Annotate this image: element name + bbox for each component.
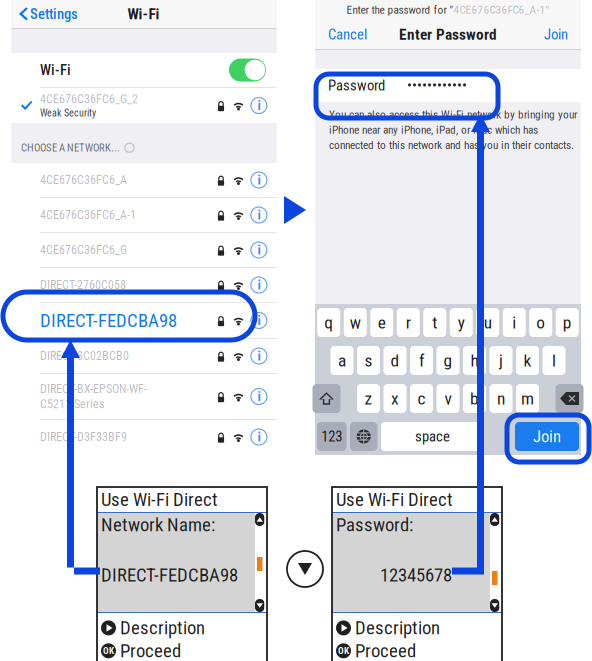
staticText: m: [521, 388, 534, 409]
staticText: DIRECT-2760C058: [40, 278, 126, 292]
button[interactable]: y: [450, 308, 473, 337]
button[interactable]: z: [357, 384, 380, 413]
staticText: Password: [328, 77, 385, 94]
button[interactable]: n: [489, 384, 512, 413]
button[interactable]: DIRECT-FEDCBA98: [11, 303, 277, 338]
button[interactable]: 4CE676C36FC6_G: [11, 233, 277, 267]
button[interactable]: Cancel: [315, 21, 367, 48]
button[interactable]: s: [357, 346, 380, 375]
staticText: Weak Security: [40, 107, 96, 119]
staticText: Wi-Fi: [40, 61, 71, 79]
staticText: k: [523, 350, 531, 371]
button[interactable]: i: [503, 308, 526, 337]
button[interactable]: d: [383, 346, 406, 375]
button[interactable]: r: [397, 308, 420, 337]
staticText: e: [378, 312, 386, 333]
button[interactable]: Next keyboard: [350, 422, 377, 451]
staticText: u: [484, 312, 492, 333]
button[interactable]: k: [516, 346, 539, 375]
button[interactable]: DIRECT-BX-EPSON-WF-: [11, 374, 277, 419]
staticText: Description: [355, 617, 440, 639]
staticText: n: [497, 388, 505, 409]
staticText: DIRECT-BX-EPSON-WF-: [40, 382, 147, 396]
staticText: i: [257, 389, 260, 404]
button[interactable]: h: [463, 346, 486, 375]
button[interactable]: Join: [515, 422, 579, 451]
staticText: Use Wi-Fi Direct: [336, 489, 453, 510]
button[interactable]: q: [317, 308, 340, 337]
staticText: f: [419, 350, 424, 371]
button[interactable]: m: [516, 384, 539, 413]
staticText: space: [415, 428, 450, 445]
button[interactable]: l: [542, 346, 565, 375]
button[interactable]: Wi-Fi on: [229, 58, 266, 81]
staticText: 4CE676C36FC6_A: [40, 173, 127, 187]
button[interactable]: o: [529, 308, 552, 337]
staticText: h: [470, 350, 478, 371]
staticText: b: [470, 388, 479, 409]
staticText: Join: [544, 26, 568, 43]
staticText: 12345678: [380, 564, 452, 586]
staticText: Enter Password: [399, 25, 497, 43]
staticText: Network Name:: [101, 514, 215, 536]
staticText: y: [458, 312, 465, 333]
staticText: i: [257, 313, 260, 328]
staticText: i: [512, 312, 516, 333]
staticText: g: [443, 350, 452, 371]
staticText: connected to this network and has you in…: [329, 139, 574, 152]
button[interactable]: Join: [544, 21, 581, 48]
staticText: i: [257, 277, 260, 293]
button[interactable]: e: [370, 308, 393, 337]
button[interactable]: Settings: [11, 0, 78, 28]
staticText: 4CE676C36FC6_G_2: [40, 92, 138, 106]
button[interactable]: DIRECT-D3F33BF9: [11, 420, 277, 454]
staticText: i: [257, 98, 260, 113]
button[interactable]: u: [476, 308, 499, 337]
button[interactable]: space: [381, 422, 484, 451]
staticText: DIRECT-FEDCBA98: [101, 564, 238, 586]
button[interactable]: 4CE676C36FC6_A-1: [11, 198, 277, 232]
staticText: p: [563, 312, 572, 333]
button[interactable]: DIRECT-2760C058: [11, 268, 277, 302]
button[interactable]: DIRECT-8C02BCB0: [11, 339, 277, 373]
staticText: j: [499, 350, 503, 371]
staticText: w: [350, 312, 361, 333]
button[interactable]: Shift: [312, 384, 340, 413]
button[interactable]: c: [410, 384, 433, 413]
staticText: v: [444, 388, 451, 409]
staticText: Enter the password for ": [346, 3, 453, 17]
staticText: Description: [120, 617, 205, 639]
staticText: i: [257, 172, 260, 188]
staticText: c: [417, 388, 425, 409]
staticText: You can also access this Wi-Fi network b…: [329, 108, 577, 121]
staticText: OK: [338, 645, 349, 656]
button[interactable]: w: [344, 308, 367, 337]
staticText: t: [432, 312, 437, 333]
staticText: DIRECT-D3F33BF9: [40, 430, 127, 444]
staticText: d: [390, 350, 399, 371]
button[interactable]: p: [556, 308, 579, 337]
button[interactable]: 4CE676C36FC6_G_2: [11, 88, 277, 123]
button[interactable]: a: [330, 346, 353, 375]
staticText: r: [406, 312, 411, 333]
button[interactable]: 4CE676C36FC6_A: [11, 163, 277, 197]
staticText: Password:: [336, 514, 413, 536]
staticText: DIRECT-FEDCBA98: [40, 310, 177, 331]
button[interactable]: x: [383, 384, 406, 413]
button[interactable]: v: [436, 384, 459, 413]
staticText: i: [257, 429, 260, 445]
staticText: q: [324, 312, 333, 333]
staticText: x: [391, 388, 399, 409]
button[interactable]: t: [423, 308, 446, 337]
staticText: 123: [321, 428, 342, 445]
staticText: DIRECT-8C02BCB0: [40, 349, 129, 363]
button[interactable]: f: [410, 346, 433, 375]
button[interactable]: Delete: [555, 384, 583, 413]
button[interactable]: g: [436, 346, 459, 375]
button[interactable]: j: [489, 346, 512, 375]
staticText: Cancel: [328, 26, 367, 43]
staticText: i: [257, 348, 260, 364]
button[interactable]: b: [463, 384, 486, 413]
staticText: iPhone near any iPhone, iPad, or Mac whi…: [329, 123, 538, 137]
button[interactable]: 123: [317, 422, 346, 451]
